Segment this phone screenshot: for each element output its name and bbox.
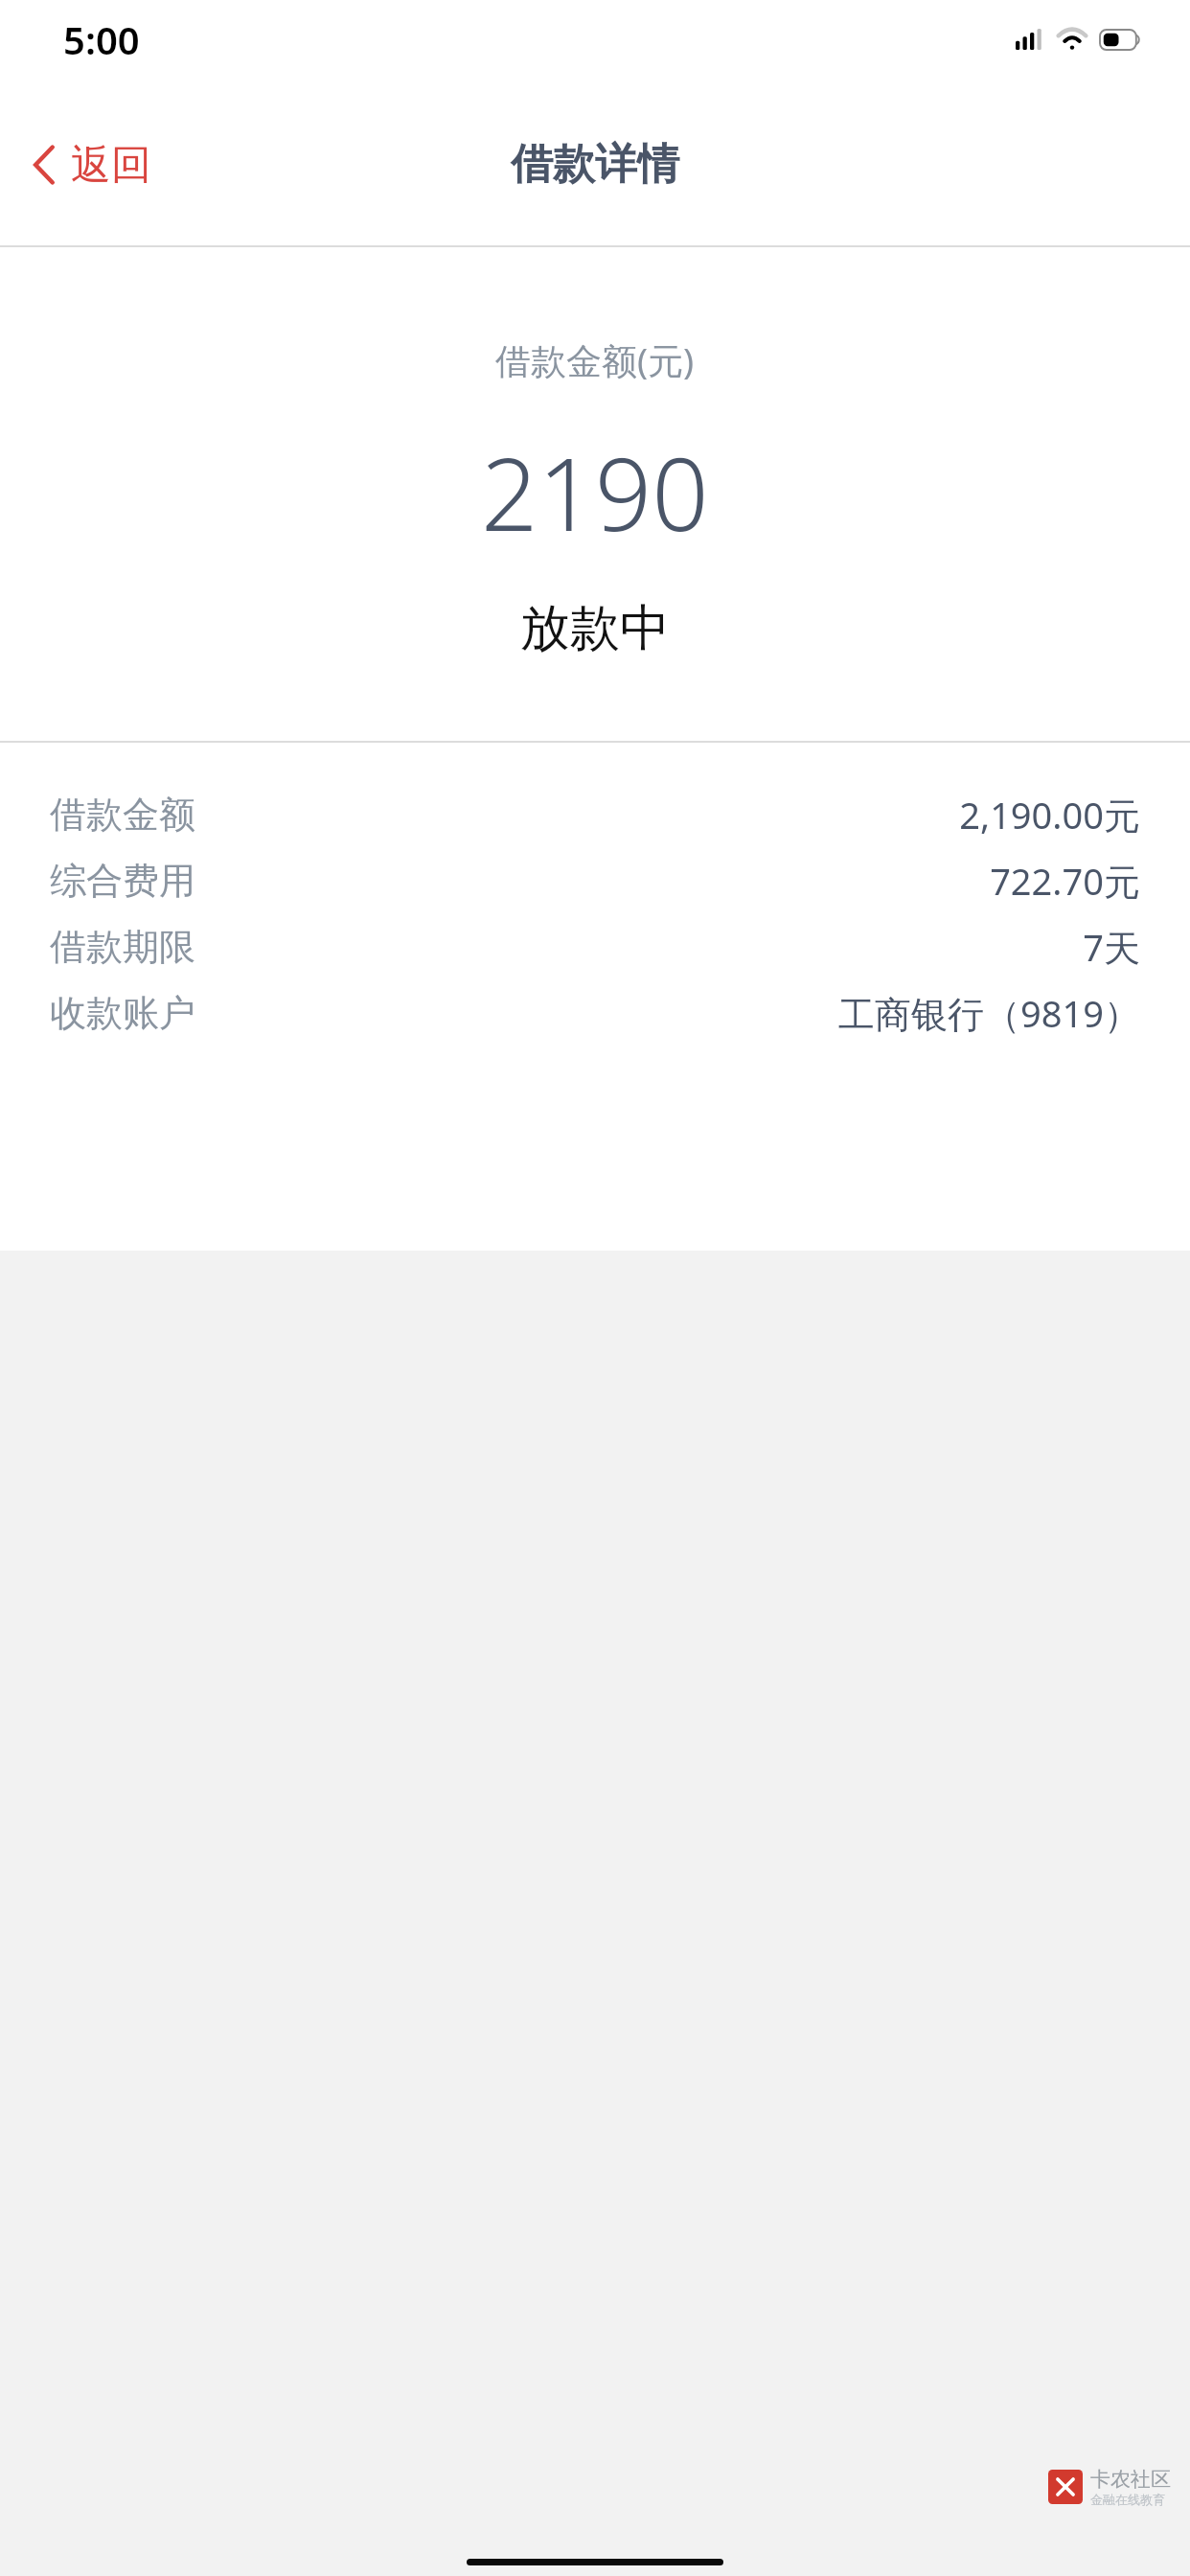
staticText: 借款期限 [50, 924, 195, 970]
staticText: 722.70元 [990, 856, 1140, 906]
button[interactable]: 返回 [0, 119, 174, 211]
staticText: 2190 [481, 425, 709, 561]
staticText: 返回 [71, 140, 151, 191]
staticText: 5:00 [63, 13, 140, 65]
button[interactable]: 借款金额 [0, 781, 1190, 847]
staticText: 2,190.00元 [959, 790, 1140, 839]
staticText: 综合费用 [50, 858, 195, 904]
staticText: 7天 [1083, 922, 1140, 972]
button[interactable]: 综合费用 [0, 847, 1190, 913]
staticText: 收款账户 [50, 990, 195, 1036]
staticText: 借款金额 [50, 792, 195, 838]
staticText: 借款金额(元) [495, 335, 695, 384]
button[interactable]: 收款账户 [0, 979, 1190, 1046]
button[interactable]: 借款期限 [0, 913, 1190, 979]
staticText: 卡农社区 [1090, 2467, 1171, 2492]
staticText: 放款中 [520, 597, 670, 660]
staticText: 借款详情 [511, 138, 679, 191]
staticText: 金融在线教育 [1090, 2492, 1165, 2507]
staticText: 工商银行（9819） [838, 988, 1140, 1038]
